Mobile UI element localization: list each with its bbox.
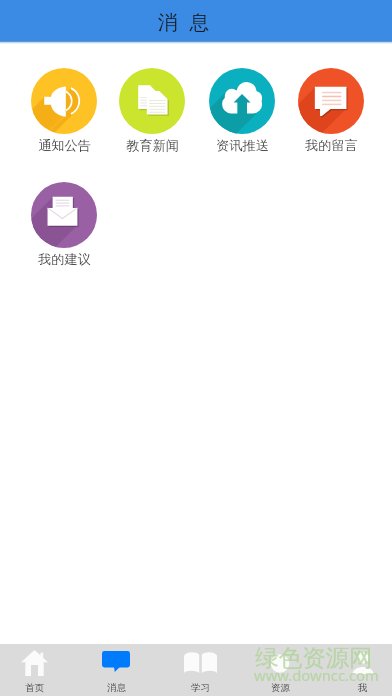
staticText: 资讯推送 (216, 137, 269, 154)
staticText: 学习 (191, 682, 210, 694)
staticText: 我的建议 (38, 251, 91, 268)
staticText: 首页 (25, 682, 44, 694)
staticText: 消 息 (158, 8, 213, 35)
button[interactable]: 消息 (81, 644, 151, 696)
button[interactable]: 我的留言 (289, 68, 373, 154)
staticText: www.downcc.com (254, 665, 379, 685)
button[interactable]: 首页 (0, 644, 69, 696)
staticText: 我 (358, 682, 368, 694)
button[interactable]: 教育新闻 (110, 68, 194, 154)
button[interactable]: 资讯推送 (200, 68, 284, 154)
button[interactable]: 我的建议 (22, 182, 106, 268)
staticText: 通知公告 (38, 137, 91, 154)
staticText: 我的留言 (305, 137, 358, 154)
staticText: 资源 (271, 682, 290, 694)
button[interactable]: 我 (328, 644, 392, 696)
button[interactable]: 通知公告 (22, 68, 106, 154)
button[interactable]: 资源 (245, 644, 315, 696)
button[interactable]: 学习 (165, 644, 235, 696)
staticText: 消息 (107, 682, 126, 694)
staticText: 教育新闻 (126, 137, 179, 154)
staticText: 绿色资源网 (255, 643, 373, 673)
